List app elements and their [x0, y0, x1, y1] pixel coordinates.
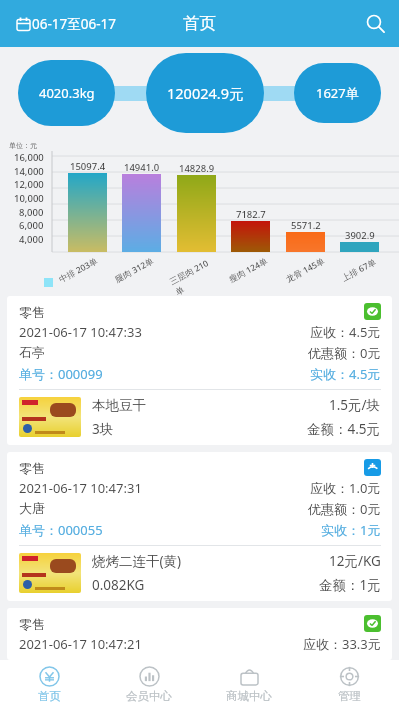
staticText: 16,000 [14, 151, 44, 164]
staticText: 瘦肉 124单 [227, 255, 270, 285]
staticText: 管理 [338, 689, 361, 703]
button[interactable]: 120024.9元 [146, 53, 264, 133]
staticText: 实收：1元 [321, 521, 381, 539]
staticText: 4,000 [19, 233, 44, 246]
staticText: 金额：1元 [319, 576, 381, 594]
staticText: 首页 [183, 13, 216, 34]
staticText: 商城中心 [226, 689, 272, 703]
staticText: 零售 [19, 616, 364, 632]
staticText: 14828.9 [179, 162, 215, 175]
staticText: 优惠额：0元 [308, 500, 381, 518]
staticText: 7182.7 [236, 208, 266, 221]
staticText: 会员中心 [126, 689, 172, 703]
staticText: 烧烤二连干(黄) [92, 552, 182, 570]
button[interactable]: 管理 [299, 660, 399, 709]
staticText: 12,000 [14, 178, 44, 191]
staticText: 零售 [19, 304, 364, 320]
staticText: 14941.0 [124, 161, 160, 174]
staticText: 6,000 [19, 219, 44, 232]
staticText: 应收：1.0元 [310, 479, 381, 497]
staticText: 1627单 [316, 84, 359, 102]
staticText: 大唐 [19, 500, 308, 516]
staticText: 三层肉 210单 [167, 254, 222, 297]
staticText: 3902.9 [345, 229, 375, 242]
staticText: 龙骨 145单 [284, 255, 327, 285]
button[interactable]: Alipay [364, 459, 381, 476]
staticText: 2021-06-17 10:47:21 [19, 635, 303, 653]
staticText: 3块 [92, 420, 114, 438]
staticText: 10,000 [14, 192, 44, 205]
staticText: 8,000 [19, 206, 44, 219]
staticText: 实收：4.5元 [310, 365, 381, 383]
staticText: 2021-06-17 10:47:31 [19, 479, 310, 497]
staticText: 中排 203单 [57, 255, 100, 285]
staticText: 零售 [19, 460, 364, 476]
staticText: 单号：000055 [19, 521, 321, 539]
staticText: 14,000 [14, 165, 44, 178]
button[interactable]: WeChat Pay [364, 303, 381, 320]
button[interactable]: WeChat Pay [364, 615, 381, 632]
staticText: 金额：4.5元 [307, 420, 381, 438]
button[interactable]: 4020.3kg [18, 60, 115, 126]
staticText: 12元/KG [329, 552, 381, 570]
button[interactable]: 会员中心 [99, 660, 199, 709]
staticText: 单位：元 [9, 141, 37, 150]
staticText: 5571.2 [291, 219, 321, 232]
staticText: 15097.4 [70, 160, 106, 173]
staticText: 06-17至06-17 [32, 15, 116, 33]
staticText: 4020.3kg [39, 84, 95, 102]
button[interactable]: 零售 [7, 296, 392, 445]
staticText: 优惠额：0元 [308, 344, 381, 362]
staticText: 上排 67单 [339, 256, 379, 284]
button[interactable]: 1627单 [294, 63, 381, 123]
staticText: 2021-06-17 10:47:33 [19, 323, 310, 341]
staticText: 本地豆干 [92, 397, 146, 414]
staticText: 1.5元/块 [329, 396, 381, 414]
button[interactable]: 零售 [7, 608, 392, 660]
staticText: 应收：4.5元 [310, 323, 381, 341]
staticText: 首页 [38, 689, 61, 703]
staticText: 腿肉 312单 [113, 255, 156, 285]
staticText: 120024.9元 [167, 83, 244, 103]
button[interactable]: Search [352, 0, 399, 47]
staticText: 应收：33.3元 [303, 635, 381, 653]
staticText: 0.082KG [92, 576, 145, 594]
staticText: 石亭 [19, 344, 308, 360]
button[interactable]: 零售 [7, 452, 392, 601]
staticText: 单号：000099 [19, 365, 310, 383]
button[interactable]: 商城中心 [199, 660, 299, 709]
button[interactable]: 首页 [0, 660, 99, 709]
button[interactable]: 06-17至06-17 [0, 9, 124, 39]
